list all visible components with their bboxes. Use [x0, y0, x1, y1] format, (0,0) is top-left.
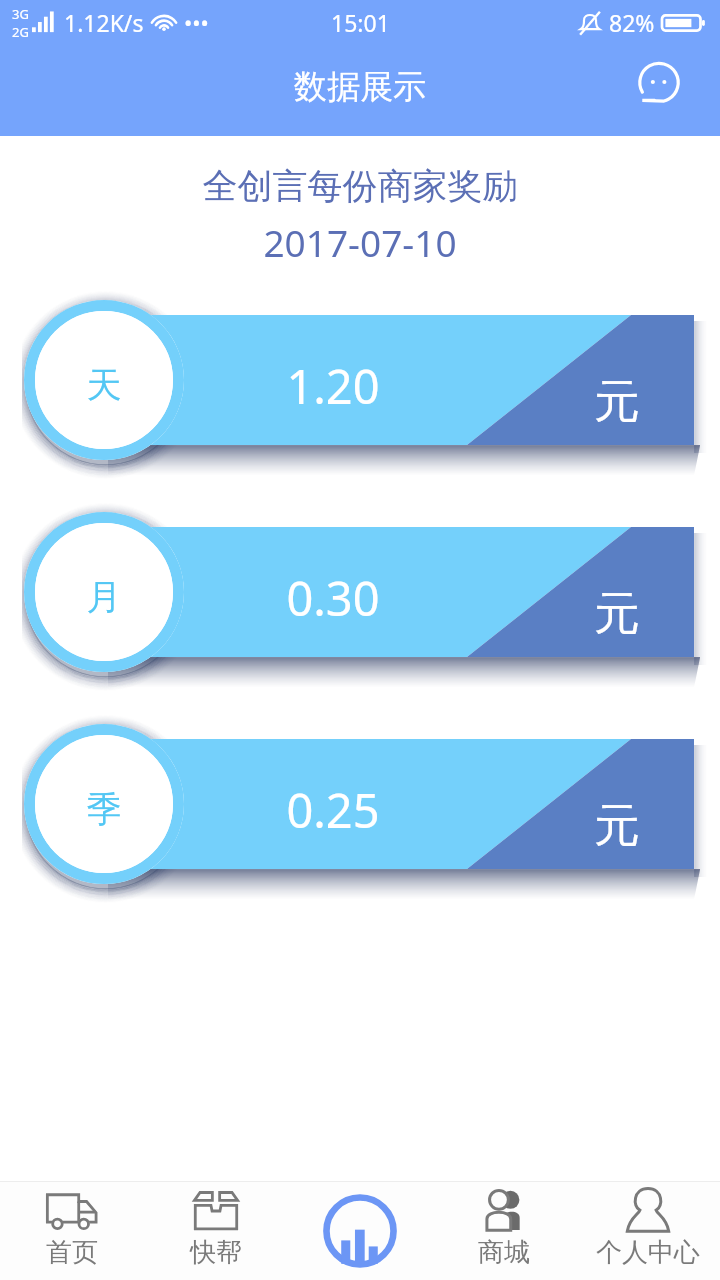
staticText: 快帮 — [190, 1236, 242, 1269]
button[interactable]: 首页 — [0, 1182, 144, 1280]
staticText: 1.20 — [233, 354, 433, 418]
button[interactable] — [104, 315, 694, 445]
button[interactable]: 商城 — [432, 1182, 576, 1280]
button[interactable]: 快帮 — [144, 1182, 288, 1280]
staticText: 个人中心 — [596, 1236, 700, 1269]
button[interactable]: 个人中心 — [576, 1182, 720, 1280]
staticText: 0.25 — [233, 778, 433, 842]
button[interactable]: 数据展示 — [288, 1182, 432, 1280]
staticText: 82% — [609, 7, 655, 38]
staticText: 元 — [572, 585, 662, 643]
staticText: 首页 — [46, 1236, 98, 1269]
staticText: 2017-07-10 — [0, 217, 720, 267]
staticText: 数据展示 — [294, 66, 426, 108]
staticText: 季 — [24, 787, 184, 831]
staticText: 商城 — [478, 1236, 530, 1269]
staticText: 0.30 — [233, 566, 433, 630]
staticText: 天 — [24, 363, 184, 407]
staticText: 元 — [572, 797, 662, 855]
staticText: 3G — [12, 5, 29, 23]
button[interactable] — [104, 527, 694, 657]
staticText: 全创言每份商家奖励 — [0, 164, 720, 208]
button[interactable]: Chat — [635, 59, 683, 107]
staticText: 月 — [24, 575, 184, 619]
staticText: 2G — [12, 23, 29, 39]
button[interactable] — [104, 739, 694, 869]
staticText: ••• — [184, 7, 209, 37]
staticText: 元 — [572, 373, 662, 431]
staticText: 15:01 — [331, 7, 390, 38]
staticText: 1.12K/s — [64, 7, 144, 38]
